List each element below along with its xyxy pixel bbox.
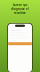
staticText: diagnose el bbox=[11, 7, 29, 11]
staticText: Lorem ips bbox=[13, 3, 27, 7]
staticText: recolrize bbox=[14, 11, 26, 15]
